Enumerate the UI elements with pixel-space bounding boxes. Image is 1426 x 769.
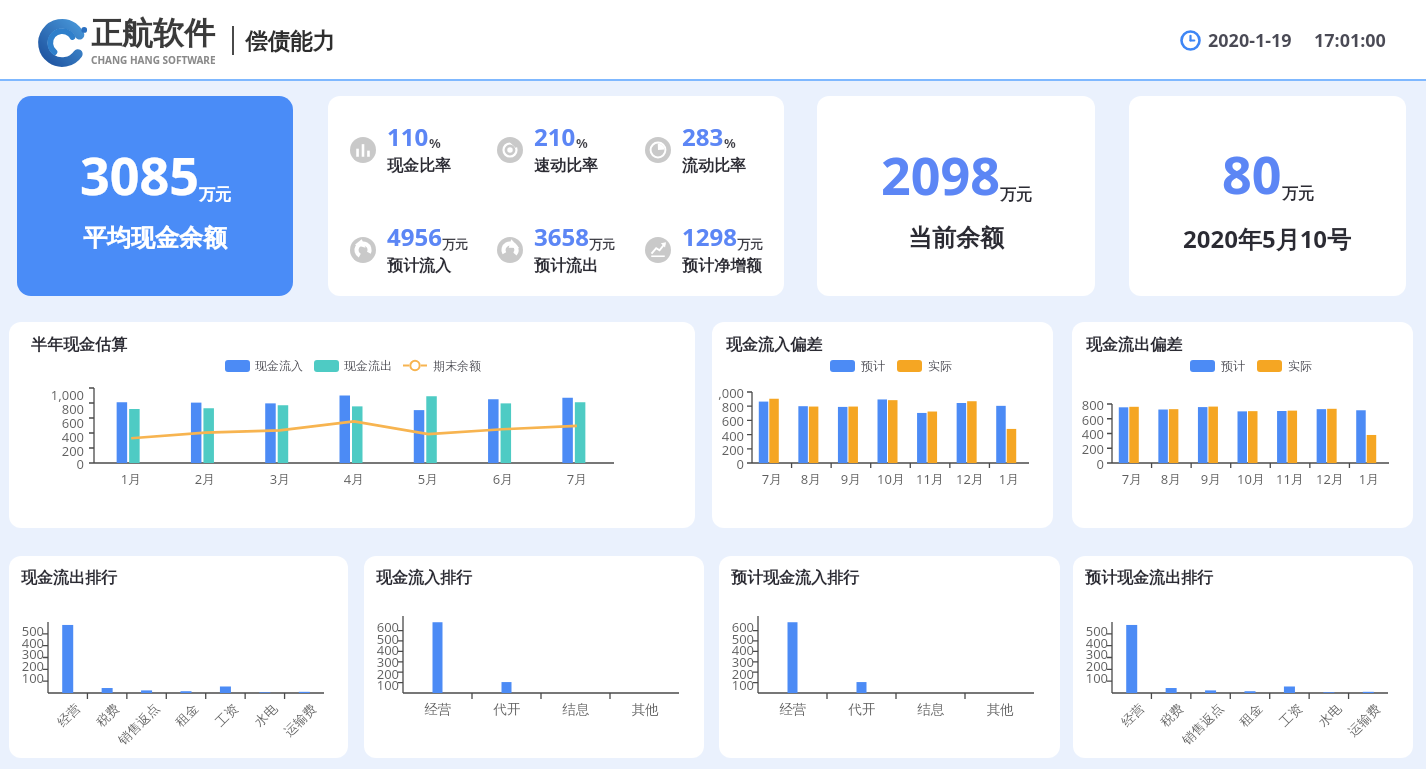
button[interactable]: 现金流出偏差 [1072, 322, 1413, 528]
staticText: 0 [712, 455, 744, 473]
staticText: 400 [712, 427, 744, 445]
staticText: 现金流入偏差 [726, 335, 822, 355]
staticText: 400 [9, 634, 44, 652]
staticText: 1月 [969, 470, 1049, 488]
staticText: 500 [9, 622, 44, 640]
staticText: 税费 [1156, 700, 1185, 729]
staticText: 现金比率 [387, 156, 451, 176]
button[interactable]: 现金流入偏差 [712, 322, 1053, 528]
staticText: 1月 [1329, 470, 1409, 488]
staticText: 1,000 [9, 386, 84, 404]
staticText: 11月 [890, 470, 970, 488]
staticText: 200 [1072, 440, 1104, 458]
button[interactable]: 预计现金流出排行 [1073, 556, 1413, 758]
button[interactable]: 210 [497, 120, 598, 176]
staticText: 400 [1072, 425, 1104, 443]
staticText: 结息 [891, 701, 971, 718]
button[interactable]: 3085 [17, 96, 293, 296]
button[interactable]: 现金流出排行 [9, 556, 348, 758]
staticText: 销售返点 [114, 700, 162, 747]
staticText: 2020年5月10号 [1183, 222, 1352, 255]
staticText: 2月 [165, 470, 245, 488]
staticText: 4956 [387, 220, 442, 253]
staticText: 预计 [861, 358, 885, 373]
staticText: 1月 [91, 470, 171, 488]
staticText: 200 [712, 441, 744, 459]
staticText: 0 [9, 455, 84, 473]
staticText: 经营 [753, 701, 833, 718]
staticText: 结息 [536, 701, 616, 718]
staticText: 现金流出偏差 [1086, 335, 1182, 355]
staticText: 200 [364, 665, 399, 683]
staticText: 300 [719, 653, 754, 671]
staticText: 300 [9, 645, 44, 663]
staticText: 283 [682, 120, 724, 153]
staticText: 0 [1072, 455, 1104, 473]
staticText: 水电 [1314, 700, 1343, 729]
staticText: 3658 [534, 220, 589, 253]
staticText: 200 [719, 665, 754, 683]
staticText: 500 [364, 630, 399, 648]
staticText: 200 [9, 442, 84, 460]
button[interactable]: 3658 [497, 220, 615, 276]
staticText: 预计流入 [387, 256, 451, 276]
staticText: 期末余额 [433, 358, 481, 373]
button[interactable]: 半年现金估算 [9, 322, 695, 528]
staticText: 预计现金流入排行 [731, 568, 859, 588]
staticText: 经营 [1117, 700, 1146, 729]
staticText: 800 [9, 400, 84, 418]
staticText: 400 [719, 641, 754, 659]
staticText: 4月 [314, 470, 394, 488]
button[interactable]: 2098 [817, 96, 1095, 296]
button[interactable]: 110 [350, 120, 451, 176]
staticText: 80 [1222, 138, 1282, 209]
staticText: 7月 [732, 470, 812, 488]
staticText: 11月 [1250, 470, 1330, 488]
button[interactable]: 现金流入排行 [364, 556, 704, 758]
staticText: 3月 [240, 470, 320, 488]
staticText: 10月 [851, 470, 931, 488]
staticText: 代开 [822, 701, 902, 718]
staticText: 运输费 [1344, 700, 1383, 739]
staticText: 8月 [1131, 470, 1211, 488]
staticText: 8月 [771, 470, 851, 488]
staticText: 工资 [1275, 700, 1304, 729]
staticText: 600 [1072, 411, 1104, 429]
staticText: 200 [9, 657, 44, 675]
button[interactable]: 1298 [645, 220, 763, 276]
staticText: 万元 [737, 236, 763, 252]
staticText: 实际 [1288, 358, 1312, 373]
staticText: 半年现金估算 [31, 335, 127, 355]
staticText: 100 [719, 676, 754, 694]
staticText: 600 [364, 618, 399, 636]
staticText: 运输费 [280, 700, 319, 739]
staticText: 经营 [53, 700, 82, 729]
staticText: 现金流入 [255, 358, 303, 373]
staticText: 600 [712, 412, 744, 430]
staticText: 9月 [1171, 470, 1251, 488]
staticText: 400 [9, 428, 84, 446]
staticText: 400 [364, 641, 399, 659]
staticText: 110 [387, 120, 429, 153]
staticText: 9月 [811, 470, 891, 488]
button[interactable]: 283 [645, 120, 746, 176]
staticText: 速动比率 [534, 156, 598, 176]
staticText: 200 [1073, 657, 1108, 675]
button[interactable]: 4956 [350, 220, 468, 276]
staticText: 平均现金余额 [83, 223, 227, 253]
button[interactable]: 预计现金流入排行 [719, 556, 1060, 758]
staticText: 100 [1073, 669, 1108, 687]
button[interactable]: 80 [1129, 96, 1406, 296]
staticText: 工资 [211, 700, 240, 729]
staticText: 3085 [80, 139, 199, 210]
staticText: 500 [719, 630, 754, 648]
staticText: % [429, 134, 441, 152]
staticText: 10月 [1211, 470, 1291, 488]
button[interactable]: 110 [328, 96, 784, 296]
staticText: 其他 [960, 701, 1040, 718]
staticText: 租金 [1235, 700, 1264, 729]
staticText: 100 [364, 676, 399, 694]
staticText: 万元 [199, 185, 231, 205]
staticText: 万元 [1000, 185, 1032, 205]
staticText: 800 [1072, 396, 1104, 414]
